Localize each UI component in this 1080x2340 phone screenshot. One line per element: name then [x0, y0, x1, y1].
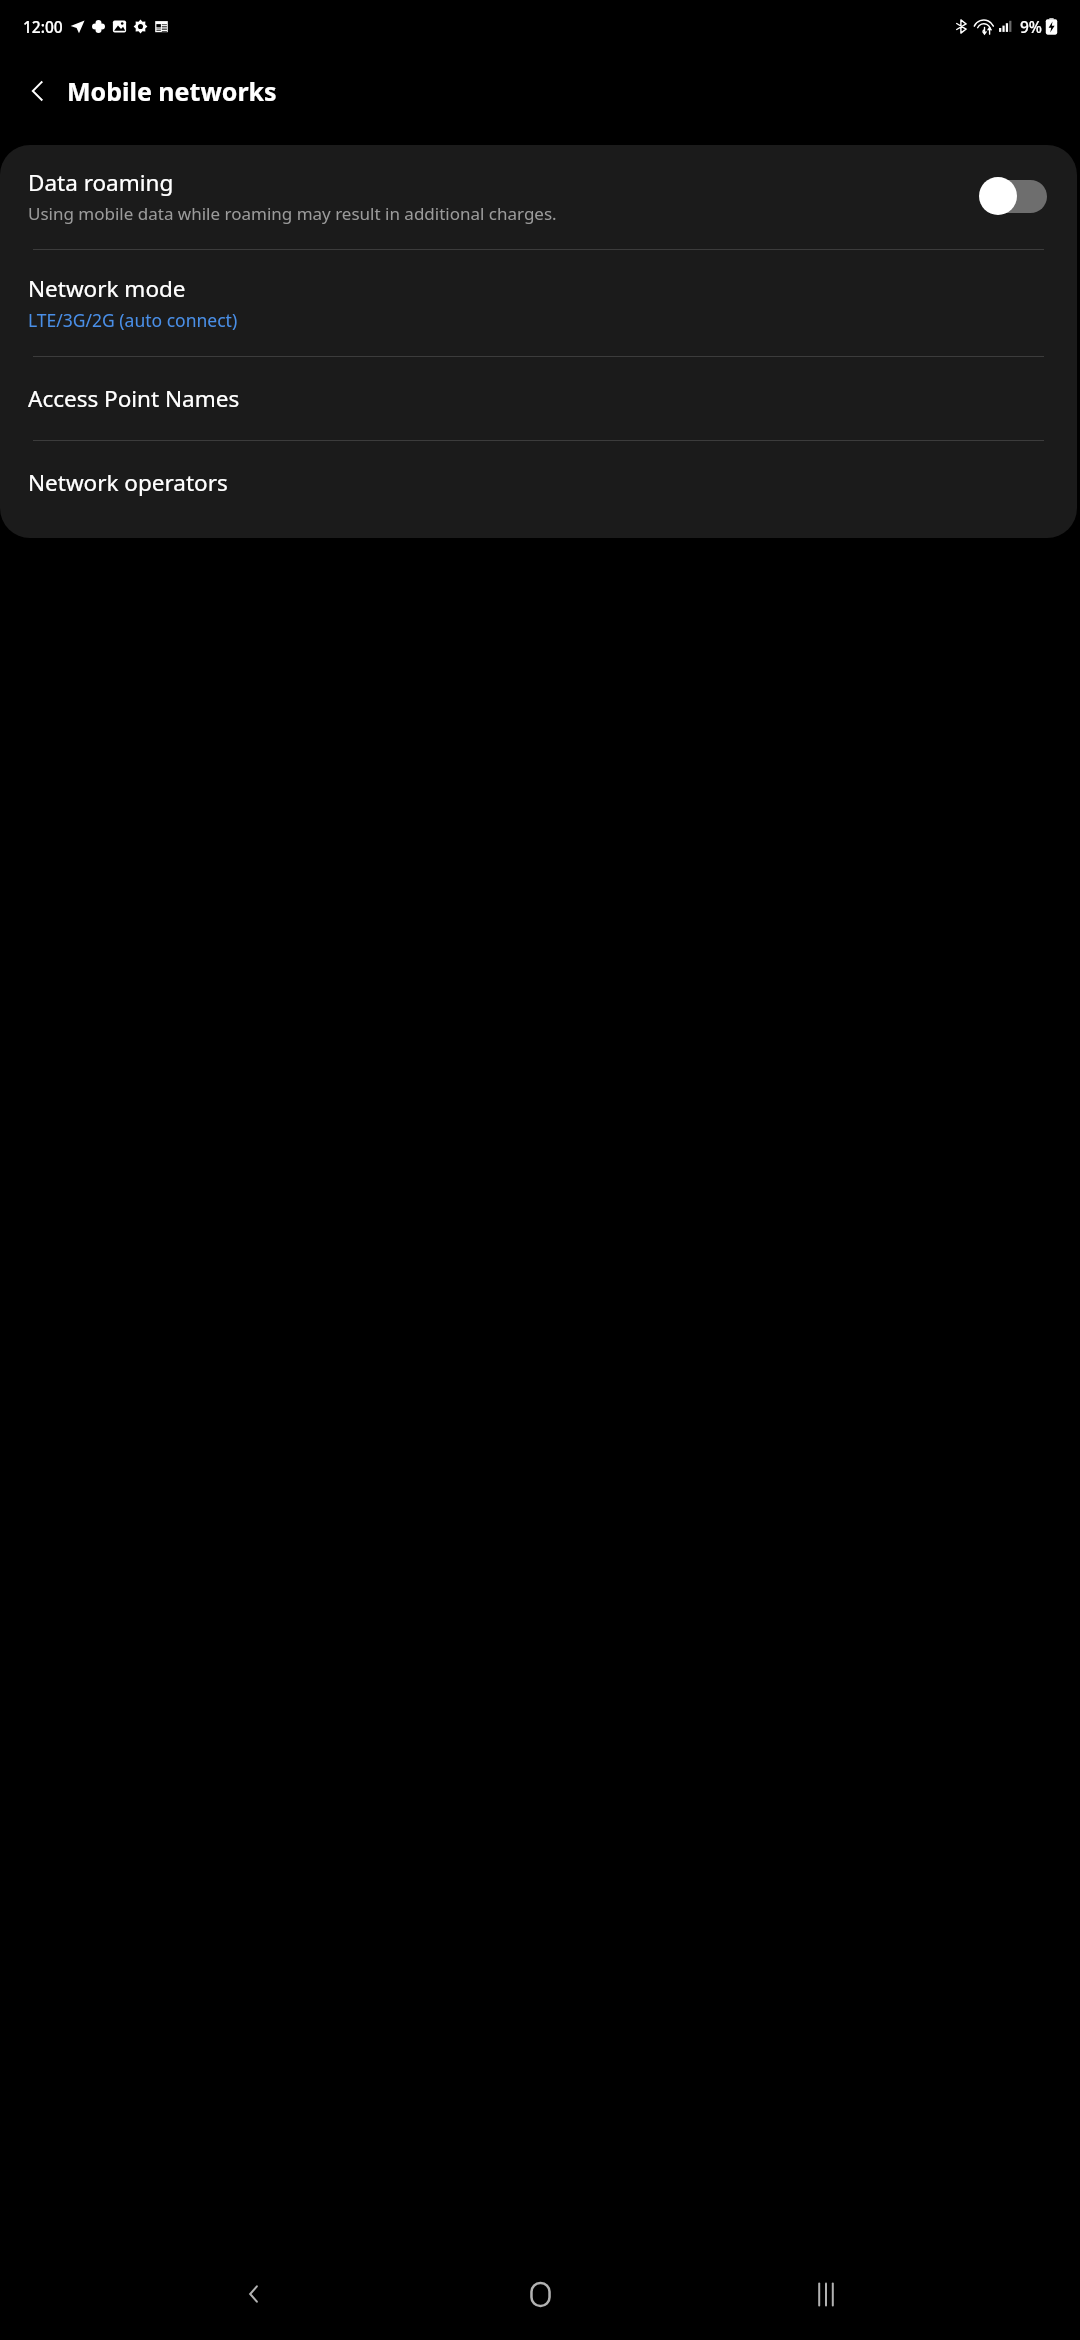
button[interactable]: Data roaming toggle [979, 176, 1047, 216]
staticText: Network operators [28, 467, 228, 498]
staticText: LTE/3G/2G (auto connect) [28, 308, 238, 332]
staticText: Using mobile data while roaming may resu… [28, 202, 557, 225]
button[interactable]: Access Point Names [0, 357, 1077, 440]
button[interactable]: Home [508, 2262, 572, 2326]
staticText: Network mode [28, 273, 186, 304]
button[interactable]: Back [14, 67, 62, 115]
staticText: Data roaming [28, 167, 174, 198]
button[interactable]: Network mode [0, 250, 1077, 356]
button[interactable]: Back [222, 2262, 286, 2326]
staticText: 9% [1020, 16, 1043, 37]
staticText: Access Point Names [28, 383, 240, 414]
button[interactable]: Recent apps [794, 2262, 858, 2326]
staticText: 12:00 [23, 16, 63, 37]
staticText: Mobile networks [67, 74, 277, 108]
button[interactable]: Data roaming [0, 145, 1077, 249]
button[interactable]: Network operators [0, 441, 1077, 524]
